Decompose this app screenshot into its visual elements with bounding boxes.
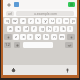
button[interactable]: Call [68,2,75,7]
staticText: i [58,18,60,24]
button[interactable]: j [53,26,59,32]
staticText: u.example.com [34,12,57,16]
button[interactable]: Microphone [63,66,71,74]
staticText: c [29,34,32,40]
staticText: x [22,34,25,40]
button[interactable]: Home [9,66,17,74]
button[interactable]: url [6,11,14,16]
staticText: m [60,34,64,40]
staticText: t [37,18,39,24]
staticText: b [45,34,48,40]
staticText: k [62,26,65,32]
button[interactable]: s [15,26,21,32]
button[interactable]: a [7,26,13,32]
button[interactable]: key [67,34,75,40]
button[interactable]: w [12,18,18,24]
staticText: a [9,26,12,32]
staticText: h [48,26,51,32]
button[interactable]: e [20,18,26,24]
button[interactable]: u [49,18,55,24]
staticText: p [72,18,75,24]
button[interactable]: m [59,34,65,40]
staticText: l [69,26,71,32]
button[interactable]: key [4,34,12,40]
button[interactable]: q [4,18,10,24]
staticText: 123 [4,42,11,48]
button[interactable]: f [31,26,37,32]
button[interactable]: l [67,26,73,32]
staticText: o [65,18,68,24]
staticText: e [22,18,25,24]
staticText: v [37,34,40,40]
button[interactable]: y [42,18,48,24]
staticText: y [44,18,47,24]
button[interactable]: o [63,18,69,24]
button[interactable]: r [28,18,34,24]
button[interactable]: u.example.com [16,11,74,16]
staticText: q [6,18,9,24]
staticText: n [53,34,56,40]
button[interactable]: z [13,34,19,40]
staticText: g [41,26,44,32]
button[interactable]: g [39,26,45,32]
button[interactable]: x [20,34,26,40]
button[interactable]: Tab [14,2,19,7]
button[interactable]: New tab [5,1,12,8]
button[interactable]: v [35,34,41,40]
button[interactable]: key [65,42,73,48]
button[interactable]: h [46,26,52,32]
button[interactable]: t [35,18,41,24]
button[interactable]: n [51,34,57,40]
staticText: j [55,26,57,32]
button[interactable]: k [60,26,66,32]
staticText: d [25,26,28,32]
button[interactable]: i [56,18,62,24]
button[interactable]: p [70,18,76,24]
staticText: w [13,18,17,24]
staticText: r [30,18,32,24]
staticText: f [33,26,35,32]
staticText: z [15,34,17,40]
button[interactable]: d [23,26,29,32]
staticText: u [51,18,54,24]
button[interactable]: c [27,34,33,40]
button[interactable]: key [14,42,20,48]
staticText: s [17,26,20,32]
button[interactable]: 123 [4,42,11,48]
button[interactable]: b [43,34,49,40]
staticText: url [8,12,13,16]
